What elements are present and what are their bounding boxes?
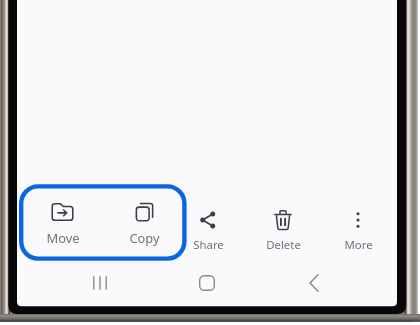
button[interactable]: Share: [172, 204, 244, 249]
button[interactable]: Move: [22, 194, 103, 241]
button[interactable]: Recents: [76, 267, 124, 299]
button[interactable]: Back: [290, 267, 338, 299]
button[interactable]: Home: [183, 267, 231, 299]
button[interactable]: More: [322, 204, 394, 249]
staticText: Delete: [266, 237, 301, 253]
button[interactable]: Copy: [104, 194, 185, 241]
staticText: More: [344, 237, 373, 253]
staticText: Move: [46, 229, 80, 247]
staticText: Share: [193, 237, 224, 253]
button[interactable]: Delete: [247, 204, 319, 249]
staticText: Copy: [129, 229, 160, 247]
